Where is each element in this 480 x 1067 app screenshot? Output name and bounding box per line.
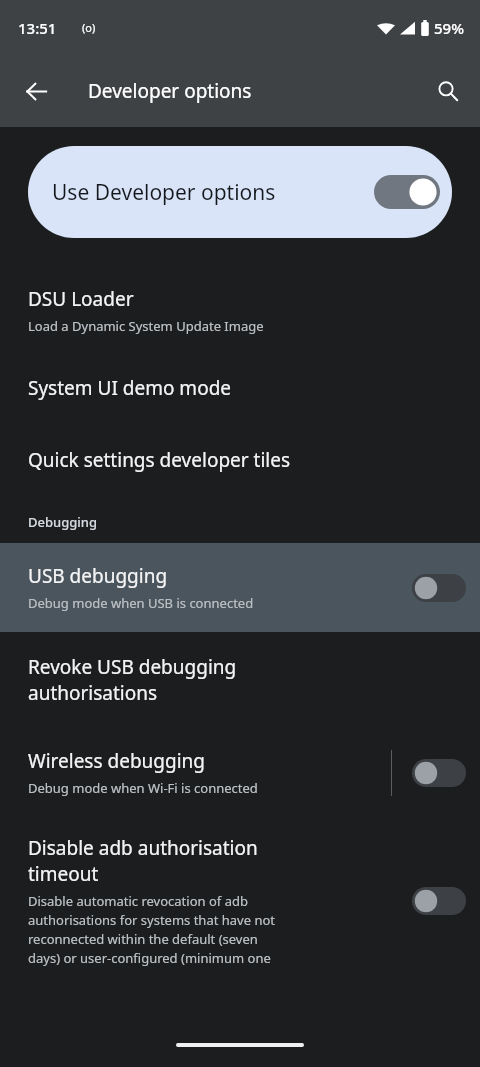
staticText: USB debugging bbox=[28, 563, 168, 589]
staticText: Load a Dynamic System Update Image bbox=[28, 317, 264, 335]
staticText: Developer options bbox=[88, 78, 252, 104]
staticText: Revoke USB debugging authorisations bbox=[28, 654, 237, 706]
staticText: Use Developer options bbox=[52, 178, 276, 207]
button[interactable]: Quick settings developer tiles bbox=[0, 425, 480, 495]
button[interactable]: Search bbox=[424, 67, 472, 115]
staticText: Debug mode when Wi-Fi is connected bbox=[28, 779, 258, 797]
button[interactable]: System UI demo mode bbox=[0, 351, 480, 425]
button[interactable]: Wireless debugging toggle bbox=[410, 751, 468, 795]
button[interactable]: USB debugging bbox=[0, 543, 480, 632]
staticText: Disable automatic revocation of adb auth… bbox=[28, 892, 275, 967]
staticText: 13:51 bbox=[18, 18, 57, 38]
staticText: Wireless debugging bbox=[28, 748, 206, 774]
staticText: (o) bbox=[82, 20, 96, 35]
staticText: Quick settings developer tiles bbox=[28, 447, 291, 473]
staticText: System UI demo mode bbox=[28, 375, 232, 401]
staticText: 59% bbox=[434, 18, 464, 38]
button[interactable]: Disable adb authorisation timeout toggle bbox=[410, 879, 468, 923]
button[interactable]: USB debugging toggle bbox=[410, 566, 468, 610]
button[interactable]: Use Developer options bbox=[28, 146, 452, 238]
staticText: Disable adb authorisation timeout bbox=[28, 835, 258, 887]
button[interactable]: Wireless debugging bbox=[0, 726, 480, 815]
button[interactable]: DSU Loader bbox=[0, 260, 480, 351]
staticText: DSU Loader bbox=[28, 286, 134, 312]
button[interactable]: Disable adb authorisation timeout bbox=[0, 815, 480, 977]
button[interactable]: Back bbox=[12, 67, 60, 115]
button[interactable]: Revoke USB debugging authorisations bbox=[0, 632, 480, 726]
staticText: Debug mode when USB is connected bbox=[28, 594, 254, 612]
staticText: Debugging bbox=[28, 513, 98, 531]
